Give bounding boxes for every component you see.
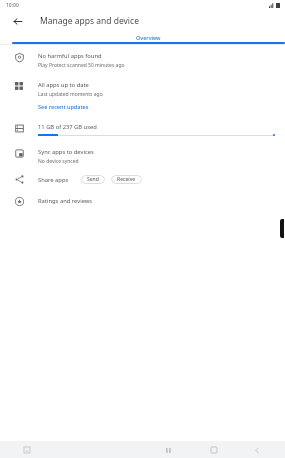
staticText: 10:00 bbox=[6, 2, 19, 9]
button[interactable]: Overview bbox=[12, 32, 285, 44]
staticText: Share apps bbox=[38, 176, 69, 184]
staticText: No device synced bbox=[38, 158, 79, 165]
button[interactable]: Keyboard bbox=[22, 445, 32, 455]
button[interactable]: No harmful apps found bbox=[0, 52, 285, 69]
button[interactable]: Send bbox=[81, 175, 105, 184]
button[interactable]: Recents bbox=[162, 444, 174, 456]
staticText: See recent updates bbox=[38, 103, 89, 110]
button[interactable]: Back bbox=[9, 13, 25, 29]
button[interactable]: 11 GB of 237 GB used bbox=[0, 123, 285, 136]
staticText: All apps up to date bbox=[38, 81, 89, 89]
staticText: No harmful apps found bbox=[38, 52, 102, 60]
button[interactable]: Receive bbox=[111, 175, 142, 184]
button[interactable]: Sync apps to devices bbox=[0, 148, 285, 165]
button[interactable]: Back bbox=[251, 444, 263, 456]
button[interactable]: See recent updates bbox=[38, 103, 89, 110]
staticText: Last updated moments ago bbox=[38, 91, 103, 98]
staticText: Sync apps to devices bbox=[38, 148, 94, 156]
staticText: Play Protect scanned 50 minutes ago bbox=[38, 62, 125, 69]
staticText: Send bbox=[87, 176, 99, 183]
staticText: Overview bbox=[136, 34, 161, 41]
button[interactable]: Home bbox=[208, 444, 220, 456]
button[interactable]: All apps up to date bbox=[0, 81, 285, 98]
staticText: Ratings and reviews bbox=[38, 197, 93, 205]
staticText: Manage apps and device bbox=[40, 15, 139, 27]
staticText: 11 GB of 237 GB used bbox=[38, 123, 97, 131]
button[interactable]: Ratings and reviews bbox=[0, 195, 285, 207]
staticText: Receive bbox=[117, 176, 136, 183]
